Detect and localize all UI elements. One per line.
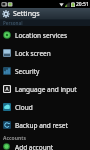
button[interactable]: Add account — [0, 143, 90, 150]
staticText: 20:51 — [76, 1, 89, 8]
button[interactable]: Backup and reset — [0, 116, 90, 134]
staticText: Personal — [3, 20, 23, 26]
staticText: Cloud — [15, 103, 33, 112]
button[interactable]: Language and input — [0, 80, 90, 98]
button[interactable]: Cloud — [0, 98, 90, 116]
button[interactable]: Location services — [0, 26, 90, 44]
staticText: Add account — [15, 143, 54, 150]
staticText: Location services — [15, 31, 68, 40]
staticText: Backup and reset — [15, 121, 68, 130]
button[interactable]: Lock screen — [0, 44, 90, 62]
staticText: Lock screen — [15, 49, 51, 58]
staticText: Language and input — [15, 85, 77, 94]
button[interactable]: Security — [0, 62, 90, 80]
staticText: Accounts — [3, 135, 26, 142]
staticText: Settings — [13, 9, 40, 19]
staticText: Security — [15, 67, 40, 76]
